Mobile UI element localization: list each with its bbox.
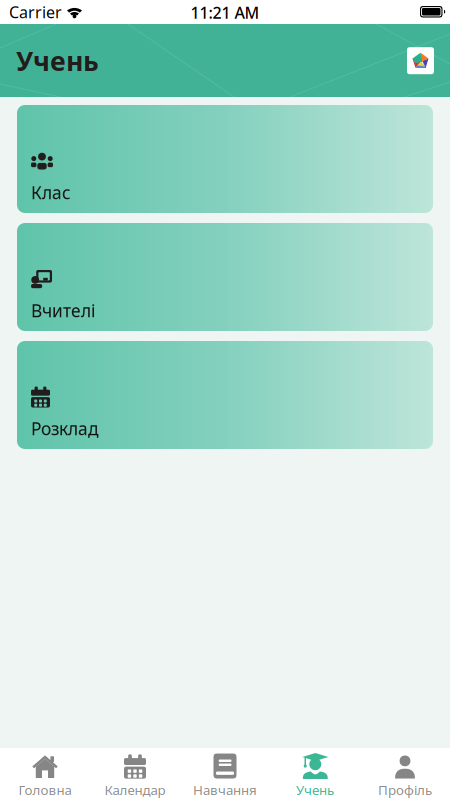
- button[interactable]: Вчителі: [17, 223, 433, 331]
- staticText: Профіль: [378, 781, 432, 799]
- staticText: Головна: [18, 781, 71, 799]
- staticText: Розклад: [31, 417, 99, 440]
- staticText: Учень: [296, 781, 334, 799]
- button[interactable]: Профіль: [360, 753, 450, 799]
- button[interactable]: Навчання: [180, 753, 270, 799]
- staticText: Carrier: [9, 1, 62, 23]
- button[interactable]: Календар: [90, 753, 180, 799]
- button[interactable]: Застосунок: [407, 47, 434, 74]
- staticText: Навчання: [193, 781, 257, 799]
- button[interactable]: Розклад: [17, 341, 433, 449]
- staticText: Вчителі: [31, 299, 95, 322]
- staticText: 11:21 AM: [190, 2, 259, 23]
- button[interactable]: Клас: [17, 105, 433, 213]
- staticText: Учень: [16, 43, 99, 78]
- button[interactable]: Головна: [0, 753, 90, 799]
- button[interactable]: Учень: [270, 753, 360, 799]
- staticText: Календар: [104, 781, 165, 799]
- staticText: Клас: [31, 181, 71, 204]
